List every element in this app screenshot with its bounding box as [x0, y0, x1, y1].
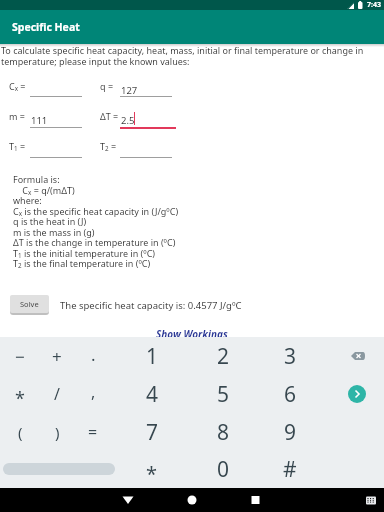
staticText: T2 is the final temperature in (ºC) — [13, 257, 151, 270]
button[interactable]: / — [41, 378, 73, 410]
button[interactable]: * — [136, 453, 168, 485]
staticText: 6 — [284, 380, 297, 409]
button[interactable] — [116, 488, 140, 512]
button[interactable]: 3 — [274, 340, 306, 372]
button[interactable]: 8 — [207, 416, 239, 448]
button[interactable]: , — [77, 378, 109, 410]
staticText: 2 — [217, 342, 230, 371]
button[interactable]: Solve — [10, 295, 49, 313]
button[interactable]: 0 — [207, 453, 239, 485]
staticText: 9 — [284, 418, 297, 447]
staticText: 5 — [217, 380, 230, 409]
staticText: T2 = — [100, 140, 117, 153]
button[interactable]: 2 — [207, 340, 239, 372]
staticText: # — [283, 455, 297, 484]
staticText: To calculate specific heat capacity, hea… — [1, 44, 364, 56]
staticText: ( — [18, 422, 23, 442]
staticText: 0 — [217, 455, 230, 484]
staticText: 127 — [121, 84, 138, 97]
staticText: The specific heat capacity is: 0.4577 J/… — [60, 299, 242, 312]
staticText: Specific Heat — [12, 20, 80, 34]
staticText: 2.5 — [121, 114, 135, 127]
button[interactable] — [180, 488, 204, 512]
staticText: m = — [9, 110, 25, 122]
staticText: ΔT is the change in temperature in (ºC) — [13, 236, 176, 248]
staticText: 4 — [146, 380, 159, 409]
button[interactable]: 9 — [274, 416, 306, 448]
staticText: Solve — [20, 299, 39, 309]
button[interactable]: Show Workings — [156, 327, 228, 341]
button[interactable]: 6 — [274, 378, 306, 410]
staticText: * — [146, 460, 158, 487]
button[interactable] — [3, 463, 115, 475]
staticText: m is the mass in (g) — [13, 226, 95, 238]
button[interactable]: ( — [4, 416, 36, 448]
button[interactable]: 7 — [136, 416, 168, 448]
staticText: Cx = — [9, 80, 26, 93]
staticText: . — [91, 343, 96, 366]
button[interactable] — [345, 344, 369, 368]
staticText: temperature; please input the known valu… — [1, 55, 190, 67]
staticText: Cx = q/(mΔT) — [13, 184, 75, 197]
staticText: q is the heat in (J) — [13, 215, 87, 227]
staticText: where: — [13, 194, 42, 206]
button[interactable] — [244, 488, 268, 512]
button[interactable]: − — [4, 340, 36, 372]
staticText: 111 — [31, 114, 48, 127]
staticText: / — [54, 383, 60, 405]
button[interactable]: 1 — [136, 340, 168, 372]
staticText: 7:43 — [367, 0, 381, 10]
staticText: q = — [100, 80, 114, 92]
staticText: 8 — [217, 418, 230, 447]
button[interactable] — [348, 385, 366, 403]
staticText: − — [15, 345, 25, 368]
staticText: Cx is the specific heat capacity in (J/g… — [13, 205, 179, 218]
staticText: T1 is the initial temperature in (ºC) — [13, 247, 156, 260]
staticText: ) — [55, 422, 60, 442]
button[interactable]: . — [77, 340, 109, 372]
button[interactable]: # — [274, 453, 306, 485]
button[interactable]: * — [4, 378, 36, 410]
staticText: Formula is: — [13, 173, 60, 185]
staticText: + — [52, 345, 62, 368]
staticText: = — [88, 421, 98, 443]
button[interactable]: + — [41, 340, 73, 372]
staticText: , — [91, 381, 96, 403]
button[interactable]: 4 — [136, 378, 168, 410]
staticText: 7 — [146, 418, 159, 447]
staticText: * — [15, 386, 25, 411]
staticText: T1 = — [9, 140, 26, 153]
button[interactable]: ) — [41, 416, 73, 448]
staticText: 3 — [284, 342, 297, 371]
button[interactable]: = — [77, 416, 109, 448]
staticText: ΔT = — [100, 110, 119, 122]
staticText: 1 — [146, 342, 159, 371]
button[interactable]: 5 — [207, 378, 239, 410]
